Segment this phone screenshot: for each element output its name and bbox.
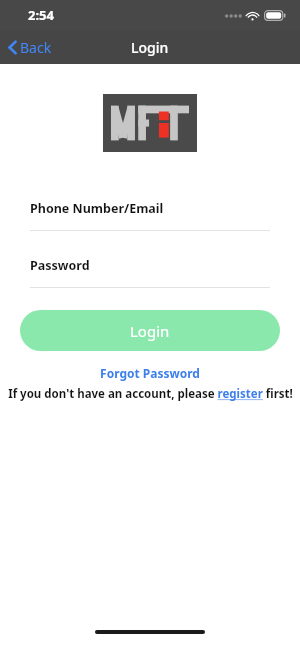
staticText: If you don't have an account, please reg… <box>8 386 293 402</box>
staticText: Back <box>20 38 52 57</box>
staticText: Password <box>30 257 90 274</box>
button[interactable]: Back <box>0 33 62 62</box>
button[interactable]: Password <box>0 257 300 288</box>
button[interactable]: Forgot Password <box>0 365 300 381</box>
staticText: Login <box>130 321 170 341</box>
staticText: Forgot Password <box>100 365 200 381</box>
staticText: Phone Number/Email <box>30 200 164 217</box>
staticText: 2:54 <box>28 6 54 24</box>
button[interactable]: Phone Number/Email <box>0 200 300 231</box>
staticText: Login <box>131 38 169 57</box>
button[interactable]: Login <box>20 310 280 351</box>
